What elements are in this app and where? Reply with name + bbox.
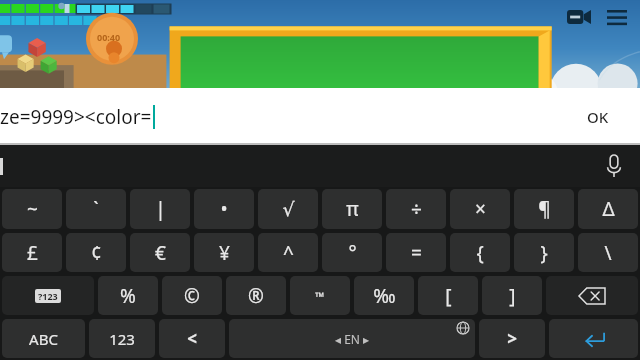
other: Change language xyxy=(457,322,469,334)
staticText: ] xyxy=(509,283,516,309)
button[interactable]: ` xyxy=(66,189,126,229)
other: Enter xyxy=(582,330,606,348)
staticText: | xyxy=(155,196,166,222)
button[interactable]: ] xyxy=(482,276,542,315)
button[interactable]: 123 xyxy=(89,319,155,358)
button[interactable]: } xyxy=(514,233,574,272)
button[interactable]: √ xyxy=(258,189,318,229)
staticText: π xyxy=(346,196,359,222)
staticText: ° xyxy=(348,240,357,266)
button[interactable]: ABC xyxy=(2,319,85,358)
button[interactable]: • xyxy=(194,189,254,229)
button[interactable]: ¢ xyxy=(66,233,126,272)
staticText: ^ xyxy=(283,240,294,266)
button[interactable]: [ xyxy=(418,276,478,315)
button[interactable]: π xyxy=(322,189,382,229)
button[interactable]: © xyxy=(162,276,222,315)
button[interactable]: { xyxy=(450,233,510,272)
staticText: ¢ xyxy=(91,240,102,266)
button[interactable]: × xyxy=(450,189,510,229)
button[interactable]: > xyxy=(479,319,545,358)
staticText: ~ xyxy=(27,196,38,222)
button[interactable]: Enter xyxy=(549,319,638,358)
staticText: [ xyxy=(445,283,452,309)
staticText: ?123 xyxy=(38,290,58,302)
button[interactable]: ÷ xyxy=(386,189,446,229)
button[interactable]: € xyxy=(130,233,190,272)
staticText: ze=9999><color= xyxy=(0,104,152,130)
button[interactable]: ~ xyxy=(2,189,62,229)
button[interactable]: = xyxy=(386,233,446,272)
button[interactable]: % xyxy=(98,276,158,315)
staticText: × xyxy=(475,196,486,222)
staticText: OK xyxy=(587,107,609,127)
button[interactable]: ° xyxy=(322,233,382,272)
button[interactable]: | xyxy=(130,189,190,229)
button[interactable]: ^ xyxy=(258,233,318,272)
staticText: √ xyxy=(282,198,295,220)
staticText: \ xyxy=(604,240,612,266)
staticText: ¥ xyxy=(219,240,230,266)
staticText: ‰ xyxy=(373,283,396,309)
other: Backspace xyxy=(579,287,605,305)
button[interactable]: Δ xyxy=(578,189,638,229)
button[interactable]: ◂ EN ▸ xyxy=(229,319,475,358)
staticText: € xyxy=(155,240,166,266)
staticText: £ xyxy=(27,240,38,266)
button[interactable]: £ xyxy=(2,233,62,272)
staticText: % xyxy=(120,283,136,309)
button[interactable]: ‰ xyxy=(354,276,414,315)
staticText: © xyxy=(184,283,200,309)
button[interactable]: ¶ xyxy=(514,189,574,229)
button[interactable]: Backspace xyxy=(546,276,638,315)
staticText: { xyxy=(476,240,484,266)
button[interactable]: Menu xyxy=(602,4,632,30)
button[interactable]: Voice input xyxy=(598,150,630,182)
button[interactable]: ¥ xyxy=(194,233,254,272)
staticText: ™ xyxy=(315,288,325,304)
staticText: • xyxy=(220,196,228,222)
staticText: } xyxy=(540,240,548,266)
staticText: ◂ EN ▸ xyxy=(335,331,370,347)
staticText: = xyxy=(411,240,422,266)
staticText: ¶ xyxy=(538,196,551,222)
button[interactable]: Record video xyxy=(562,4,596,30)
staticText: < xyxy=(187,327,197,350)
staticText: > xyxy=(507,327,517,350)
staticText: 00:40 xyxy=(97,31,121,43)
button[interactable]: \ xyxy=(578,233,638,272)
button[interactable]: < xyxy=(159,319,225,358)
staticText: ÷ xyxy=(411,196,422,222)
button[interactable]: OK xyxy=(556,88,640,145)
staticText: 123 xyxy=(109,329,135,349)
button[interactable]: ™ xyxy=(290,276,350,315)
staticText: Δ xyxy=(602,196,615,222)
staticText: ® xyxy=(248,283,264,309)
staticText: ABC xyxy=(29,329,58,349)
button[interactable]: ® xyxy=(226,276,286,315)
button[interactable]: ?123 xyxy=(2,276,94,315)
staticText: ` xyxy=(93,196,99,222)
